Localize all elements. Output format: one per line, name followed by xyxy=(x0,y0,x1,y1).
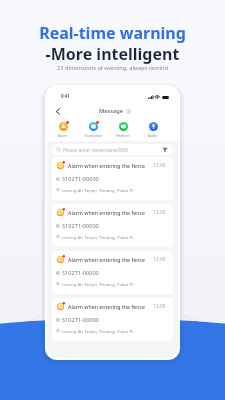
staticText: Alarm when entering the fence xyxy=(68,209,146,216)
button[interactable]: Alarm when entering the fence xyxy=(52,204,173,247)
staticText: Alarm xyxy=(58,133,68,137)
staticText: S102T1-00000 xyxy=(62,269,99,277)
staticText: S102T1-00000 xyxy=(62,175,99,183)
staticText: Audio xyxy=(148,133,158,137)
button[interactable]: Platform xyxy=(108,121,138,137)
staticText: 9:41 xyxy=(61,93,70,99)
staticText: S102T1-00000 xyxy=(62,222,99,230)
staticText: 23 dimensions of warning, always remind xyxy=(0,64,225,72)
staticText: Alarm when entering the fence xyxy=(68,162,146,169)
staticText: Instruction xyxy=(85,133,102,137)
staticText: Lorong Air Terjun, Penang, Pulau Pi xyxy=(62,234,134,240)
button[interactable]: Alarm when entering the fence xyxy=(52,298,173,341)
button[interactable]: Info xyxy=(126,109,131,114)
staticText: Alarm when entering the fence xyxy=(68,256,146,263)
button[interactable]: Instruction xyxy=(78,121,108,137)
button[interactable]: Please enter name/plate/IMEI xyxy=(52,144,173,155)
staticText: 12:00 xyxy=(153,256,166,263)
staticText: 12:00 xyxy=(153,209,166,216)
staticText: Please enter name/plate/IMEI xyxy=(63,147,129,153)
button[interactable]: Filter xyxy=(162,147,168,153)
staticText: Lorong Air Terjun, Penang, Pulau Pi xyxy=(62,328,134,334)
staticText: Lorong Air Terjun, Penang, Pulau Pi xyxy=(62,187,134,193)
staticText: Platform xyxy=(116,133,130,137)
staticText: Real-time warning xyxy=(0,22,225,44)
staticText: 12:00 xyxy=(153,162,166,169)
staticText: -More intelligent xyxy=(0,43,225,65)
staticText: Message xyxy=(99,107,124,115)
button[interactable]: Alarm xyxy=(48,121,78,137)
button[interactable]: Audio xyxy=(138,121,168,137)
button[interactable]: Alarm when entering the fence xyxy=(52,157,173,200)
staticText: S102T1-00000 xyxy=(62,316,99,324)
button[interactable]: Alarm when entering the fence xyxy=(52,251,173,294)
button[interactable]: Back xyxy=(51,104,64,118)
staticText: Lorong Air Terjun, Penang, Pulau Pi xyxy=(62,281,134,287)
staticText: Alarm when entering the fence xyxy=(68,303,146,310)
staticText: 12:00 xyxy=(153,303,166,310)
